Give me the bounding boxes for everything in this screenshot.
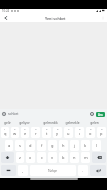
button[interactable]: Backspace <box>92 152 106 163</box>
staticText: gelen <box>90 120 99 124</box>
button[interactable]: 5 <box>42 127 51 138</box>
button[interactable]: 1 <box>1 127 9 138</box>
button[interactable]: z <box>16 152 24 163</box>
button[interactable]: l <box>92 140 101 151</box>
staticText: Türkçe <box>48 169 58 173</box>
staticText: 8 <box>79 127 81 130</box>
button[interactable]: Ara <box>96 112 105 117</box>
staticText: w <box>13 131 17 136</box>
staticText: geliyor <box>19 120 30 124</box>
button[interactable]: j <box>70 140 79 151</box>
staticText: v <box>51 155 54 160</box>
staticText: gelmedik <box>43 120 58 124</box>
button[interactable]: 2 <box>11 127 19 138</box>
staticText: j <box>74 143 76 148</box>
button[interactable]: gelir <box>0 118 14 126</box>
button[interactable]: x <box>26 152 35 163</box>
button[interactable]: Shift <box>1 152 14 163</box>
staticText: 9 <box>90 127 92 130</box>
staticText: 6 <box>57 127 59 130</box>
button[interactable]: 3 <box>21 127 29 138</box>
staticText: y <box>56 131 59 136</box>
staticText: 4 <box>35 127 37 130</box>
button[interactable]: gelmekle <box>61 118 83 126</box>
button[interactable]: d <box>26 140 35 151</box>
staticText: sohbet <box>8 112 19 116</box>
button[interactable]: gelmedik <box>40 118 60 126</box>
button[interactable]: geliyor <box>16 118 32 126</box>
button[interactable]: More options <box>98 13 107 23</box>
staticText: m <box>84 155 88 160</box>
staticText: b <box>62 155 65 160</box>
button[interactable]: v <box>48 152 57 163</box>
button[interactable]: 7 <box>64 127 73 138</box>
button[interactable]: g <box>48 140 57 151</box>
button[interactable]: m <box>81 152 90 163</box>
staticText: z <box>19 155 21 160</box>
button[interactable]: Symbols <box>1 165 16 176</box>
staticText: q <box>4 131 7 136</box>
staticText: l <box>96 143 98 148</box>
button[interactable]: a <box>5 140 13 151</box>
staticText: gelmekle <box>65 120 80 124</box>
staticText: Ara <box>98 113 103 117</box>
button[interactable]: c <box>37 152 46 163</box>
staticText: k <box>84 143 87 148</box>
staticText: 2 <box>14 127 16 130</box>
button[interactable]: n <box>70 152 79 163</box>
button[interactable]: Türkçe <box>30 165 76 176</box>
staticText: s <box>19 143 21 148</box>
button[interactable]: Back <box>0 13 12 23</box>
staticText: h <box>62 143 65 148</box>
button[interactable]: Assistant <box>1 111 7 117</box>
button[interactable]: f <box>37 140 46 151</box>
button[interactable]: Settings <box>89 111 95 117</box>
staticText: . <box>82 168 84 173</box>
button[interactable]: 9 <box>86 127 95 138</box>
staticText: 3 <box>24 127 26 130</box>
staticText: o <box>89 131 92 136</box>
staticText: f <box>41 143 43 148</box>
button[interactable]: , <box>18 165 28 176</box>
button[interactable]: b <box>59 152 68 163</box>
staticText: Yeni sohbet <box>45 16 66 21</box>
staticText: u <box>67 131 70 136</box>
staticText: 0 <box>101 127 103 130</box>
staticText: n <box>73 155 76 160</box>
button[interactable]: 0 <box>97 127 106 138</box>
button[interactable]: Enter <box>90 165 106 176</box>
staticText: d <box>29 143 32 148</box>
staticText: e <box>24 131 27 136</box>
staticText: p <box>100 131 103 136</box>
staticText: g <box>51 143 54 148</box>
staticText: 5 <box>46 127 48 130</box>
staticText: ı <box>79 131 81 136</box>
button[interactable]: 4 <box>31 127 40 138</box>
button[interactable]: gelen <box>86 118 103 126</box>
staticText: gelir <box>4 120 11 124</box>
button[interactable]: h <box>59 140 68 151</box>
staticText: t <box>46 131 48 136</box>
staticText: a <box>8 143 11 148</box>
staticText: c <box>41 155 43 160</box>
button[interactable]: 6 <box>53 127 62 138</box>
button[interactable]: 8 <box>75 127 84 138</box>
staticText: 10:24 <box>2 9 10 12</box>
staticText: 1 <box>4 127 6 130</box>
button[interactable]: s <box>15 140 24 151</box>
staticText: r <box>35 131 37 136</box>
staticText: x <box>29 155 32 160</box>
staticText: 7 <box>68 127 70 130</box>
button[interactable]: k <box>81 140 90 151</box>
staticText: , <box>22 168 24 173</box>
